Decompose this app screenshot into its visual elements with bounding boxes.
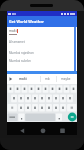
- button[interactable]: Mumbai subrbn: [9, 59, 31, 63]
- button[interactable]: malti: [19, 77, 27, 81]
- staticText: Get World Weather: [9, 19, 45, 24]
- button[interactable]: Get World Weather: [7, 16, 77, 27]
- button[interactable]: mb: [45, 77, 50, 81]
- button[interactable]: Mumbai rajasthan: [9, 51, 34, 55]
- staticText: malti: [9, 29, 17, 33]
- button[interactable]: [7, 84, 77, 122]
- button[interactable]: A hamamet: [9, 40, 25, 44]
- button[interactable]: [7, 122, 77, 135]
- button[interactable]: maybe: [61, 77, 71, 81]
